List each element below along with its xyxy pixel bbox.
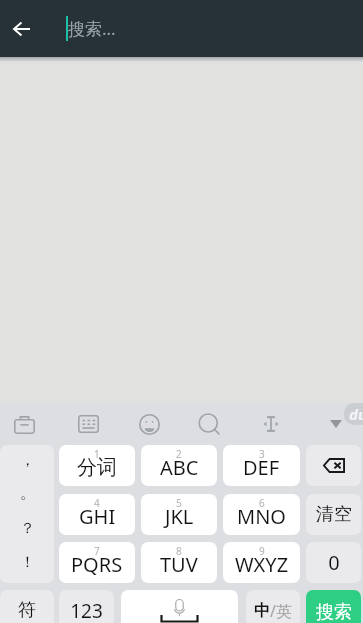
staticText: 0 bbox=[328, 549, 340, 576]
staticText: WXYZ bbox=[235, 551, 289, 578]
staticText: ？ bbox=[20, 519, 35, 538]
staticText: 分词 bbox=[77, 455, 117, 480]
button[interactable]: 9 bbox=[223, 542, 300, 583]
button[interactable]: 8 bbox=[141, 542, 217, 583]
other: Space / voice input bbox=[121, 590, 238, 623]
staticText: du bbox=[349, 404, 363, 424]
staticText: ABC bbox=[160, 454, 199, 481]
staticText: 5 bbox=[176, 496, 182, 510]
button[interactable]: 1 bbox=[59, 445, 135, 486]
button[interactable]: 搜索... bbox=[42, 0, 363, 57]
button[interactable]: 符 bbox=[0, 590, 54, 623]
button[interactable]: 0 bbox=[306, 542, 361, 583]
staticText: GHI bbox=[79, 503, 116, 530]
staticText: 搜索... bbox=[68, 17, 116, 40]
button[interactable]: 中 bbox=[246, 590, 300, 623]
button[interactable]: 123 bbox=[59, 590, 114, 623]
button[interactable]: 4 bbox=[59, 494, 135, 535]
button[interactable]: ， bbox=[0, 445, 54, 583]
button[interactable]: 7 bbox=[59, 542, 135, 583]
staticText: 搜索 bbox=[316, 601, 352, 623]
staticText: 1 bbox=[94, 447, 100, 461]
button[interactable]: Move cursor bbox=[240, 403, 301, 445]
staticText: 6 bbox=[259, 496, 265, 510]
button[interactable]: 3 bbox=[223, 445, 300, 486]
staticText: 符 bbox=[18, 599, 36, 622]
button[interactable]: Space / voice input bbox=[121, 590, 238, 623]
button[interactable]: Emoji bbox=[119, 403, 179, 445]
staticText: 9 bbox=[259, 544, 265, 558]
staticText: 123 bbox=[70, 598, 103, 623]
staticText: 3 bbox=[259, 447, 265, 461]
button[interactable]: Backspace bbox=[306, 445, 361, 486]
button[interactable]: 清空 bbox=[306, 494, 361, 535]
staticText: MNO bbox=[237, 503, 286, 530]
staticText: 7 bbox=[94, 544, 100, 558]
staticText: JKL bbox=[165, 503, 194, 530]
staticText: /英 bbox=[270, 600, 292, 622]
staticText: 2 bbox=[176, 447, 182, 461]
staticText: 8 bbox=[176, 544, 182, 558]
button[interactable]: 5 bbox=[141, 494, 217, 535]
staticText: 中 bbox=[254, 601, 270, 621]
button[interactable]: Keyboard layout bbox=[58, 403, 119, 445]
button[interactable]: More options bbox=[305, 403, 363, 445]
staticText: 清空 bbox=[316, 503, 352, 526]
staticText: 4 bbox=[94, 496, 100, 510]
button[interactable]: Clipboard bbox=[0, 403, 48, 445]
button[interactable]: 搜索 bbox=[306, 590, 361, 623]
button[interactable]: Back bbox=[0, 0, 42, 57]
button[interactable]: 6 bbox=[223, 494, 300, 535]
button[interactable]: 2 bbox=[141, 445, 217, 486]
button[interactable]: Search bbox=[179, 403, 240, 445]
staticText: ！ bbox=[20, 553, 35, 572]
staticText: 。 bbox=[20, 484, 35, 503]
staticText: TUV bbox=[160, 551, 198, 578]
staticText: ， bbox=[20, 451, 35, 470]
staticText: DEF bbox=[243, 454, 280, 481]
staticText: PQRS bbox=[71, 551, 123, 578]
